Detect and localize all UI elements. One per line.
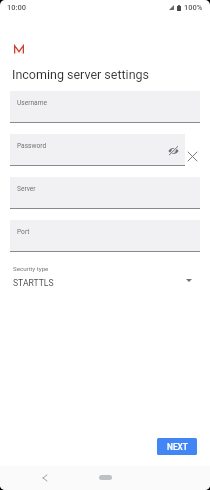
staticText: STARTTLS <box>13 278 54 288</box>
button[interactable]: Password <box>10 134 185 166</box>
button[interactable]: Home <box>99 475 112 480</box>
staticText: 100% <box>184 3 203 12</box>
staticText: Incoming server settings <box>12 67 150 82</box>
staticText: Port <box>17 228 30 236</box>
staticText: Security type <box>13 265 49 272</box>
button[interactable]: NEXT <box>157 438 197 455</box>
button[interactable]: Security type <box>10 265 200 288</box>
button[interactable]: Clear <box>184 148 200 164</box>
staticText: Username <box>17 99 47 107</box>
button[interactable]: Port <box>10 220 200 252</box>
staticText: Password <box>17 142 47 150</box>
button[interactable]: Back <box>38 471 52 485</box>
staticText: 10:00 <box>7 3 27 12</box>
button[interactable]: Username <box>10 91 200 123</box>
staticText: NEXT <box>167 442 188 452</box>
staticText: Server <box>17 185 36 193</box>
other: Show password <box>168 146 179 155</box>
button[interactable]: Server <box>10 177 200 209</box>
